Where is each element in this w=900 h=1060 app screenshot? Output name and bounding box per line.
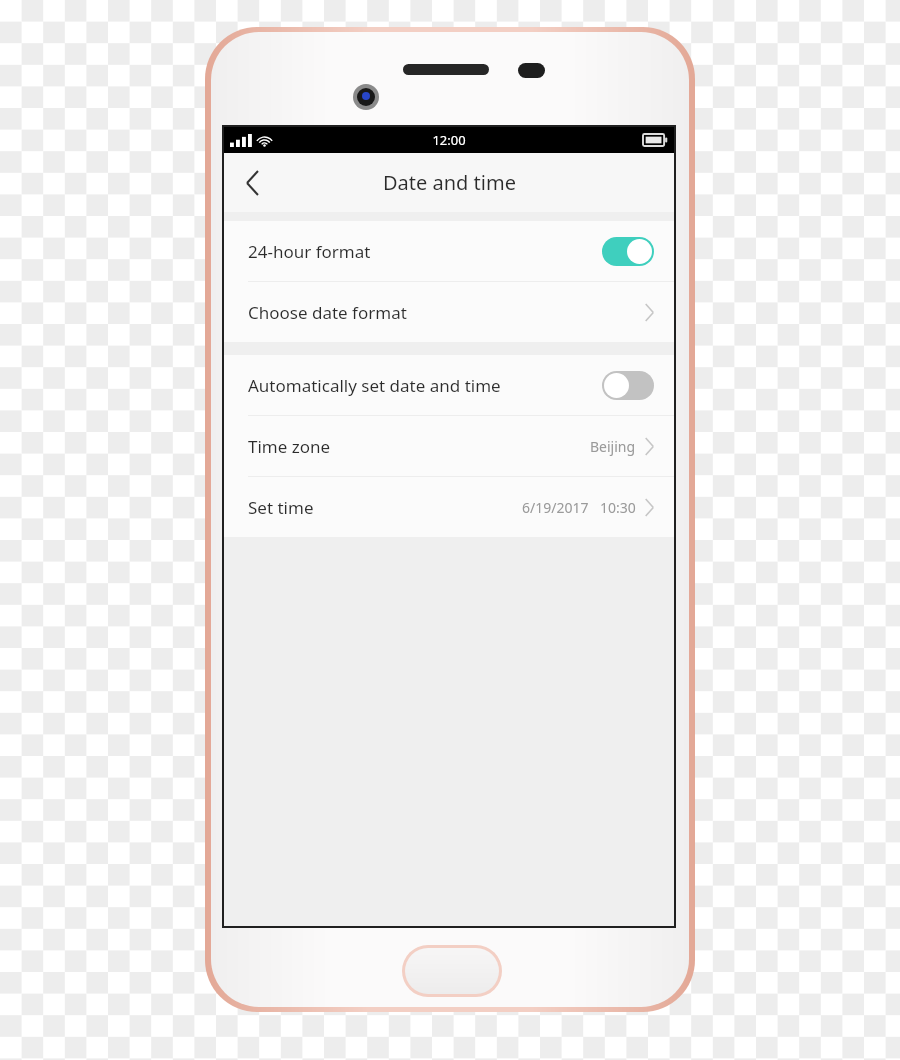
button[interactable]: Set time <box>224 477 674 537</box>
staticText: Date and time <box>383 169 516 196</box>
staticText: 6/19/2017 <box>522 498 589 517</box>
staticText: Beijing <box>590 437 636 456</box>
staticText: Set time <box>248 496 314 519</box>
staticText: 24-hour format <box>248 240 371 263</box>
staticText: Automatically set date and time <box>248 374 501 397</box>
staticText: 10:30 <box>600 498 636 517</box>
button[interactable]: Home <box>402 945 502 997</box>
staticText: 12:00 <box>432 131 466 149</box>
button[interactable]: Back <box>224 153 280 212</box>
button[interactable]: 24-hour format <box>224 221 674 281</box>
button[interactable]: Off <box>602 371 654 400</box>
button[interactable]: Choose date format <box>224 282 674 342</box>
button[interactable]: Automatically set date and time <box>224 355 674 415</box>
button[interactable]: Time zone <box>224 416 674 476</box>
staticText: Time zone <box>248 435 331 458</box>
staticText: Choose date format <box>248 301 407 324</box>
button[interactable]: On <box>602 237 654 266</box>
